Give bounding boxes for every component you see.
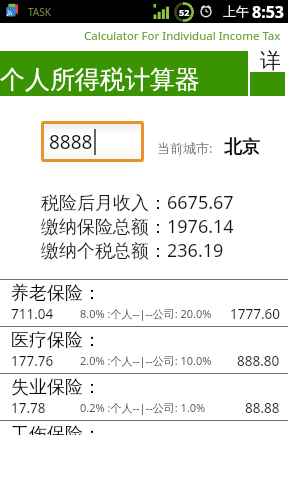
staticText: 88.88 xyxy=(245,399,280,415)
staticText: 8888 xyxy=(49,129,93,155)
button[interactable]: 医疗保险： xyxy=(0,326,288,373)
button[interactable]: 养老保险： xyxy=(0,279,288,326)
button[interactable]: 个人所得税计算器 xyxy=(0,51,248,96)
staticText: 17.78 xyxy=(11,399,46,415)
staticText: 个人所得税计算器 xyxy=(0,64,200,95)
staticText: 详 xyxy=(260,48,281,74)
staticText: 工伤保险： xyxy=(11,423,101,446)
staticText: 52 xyxy=(179,6,190,18)
button[interactable]: 失业保险： xyxy=(0,373,288,420)
staticText: TASK xyxy=(28,5,51,19)
staticText: 888.80 xyxy=(237,352,280,368)
staticText: 8:53 xyxy=(252,1,284,23)
staticText: 医疗保险： xyxy=(11,329,101,352)
staticText: 177.76 xyxy=(11,352,54,368)
staticText: 8.0% :个人--|--公司: 20.0% xyxy=(80,306,212,321)
button[interactable]: 工伤保险： xyxy=(0,420,288,467)
staticText: 1777.60 xyxy=(230,305,280,321)
staticText: 0.2% :个人--|--公司: 1.0% xyxy=(80,400,206,415)
staticText: 失业保险： xyxy=(11,376,101,399)
staticText: 上午 xyxy=(223,3,249,19)
button[interactable]: 8888 xyxy=(41,121,144,162)
staticText: 税险后月收入：6675.67 缴纳保险总额：1976.14 缴纳个税总额：236… xyxy=(41,190,234,263)
staticText: Calculator For Individual Income Tax xyxy=(84,28,281,44)
staticText: 711.04 xyxy=(11,305,54,321)
staticText: 当前城市: xyxy=(157,139,213,157)
staticText: 2.0% :个人--|--公司: 10.0% xyxy=(80,353,212,368)
staticText: 养老保险： xyxy=(11,282,101,305)
staticText: 北京 xyxy=(224,136,260,159)
button[interactable]: 详情 xyxy=(250,47,288,73)
